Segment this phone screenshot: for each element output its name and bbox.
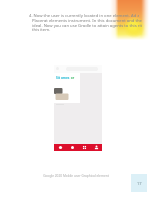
staticText: Google 2020 Mobile user Graphical elemen… [43,174,109,178]
button[interactable]: Home [54,144,66,151]
staticText: or [70,76,75,80]
button[interactable]: Profile [90,144,102,151]
staticText: 17 [137,181,142,186]
staticText: Placerat elements instrument. In this do… [32,18,142,24]
staticText: Sit ames [56,76,70,80]
staticText: ideal. Now you can use Gradle to attain … [32,23,142,29]
staticText: this item. [32,27,51,33]
button[interactable]: Dashboard [78,144,90,151]
button[interactable]: Tag [66,144,78,151]
staticText: 4. Now the user is currently located in … [29,13,139,19]
